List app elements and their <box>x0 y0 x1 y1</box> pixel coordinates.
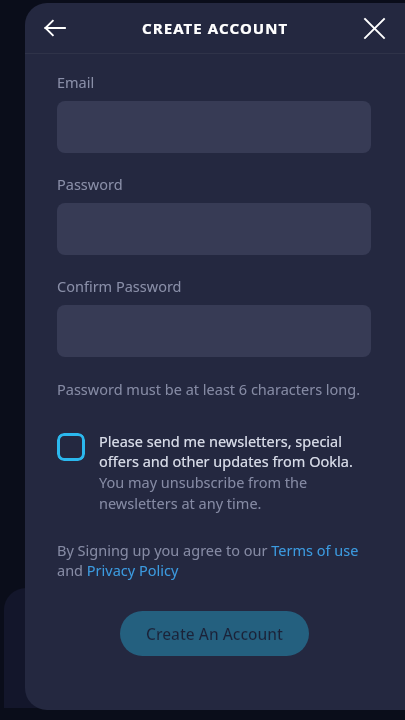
button[interactable]: By Signing up you agree to our Terms of … <box>57 540 371 581</box>
button[interactable]: Close <box>352 6 396 50</box>
staticText: Email <box>57 72 95 92</box>
staticText: Password must be at least 6 characters l… <box>57 379 361 399</box>
staticText: Create An Account <box>146 623 283 644</box>
button[interactable]: Please send me newsletters, special offe… <box>57 431 371 514</box>
button[interactable]: Back <box>31 4 79 52</box>
staticText: Confirm Password <box>57 276 182 296</box>
staticText: Password <box>57 174 123 194</box>
staticText: CREATE ACCOUNT <box>142 18 289 38</box>
button[interactable]: Create An Account <box>120 611 309 656</box>
staticText: Please send me newsletters, special offe… <box>99 431 371 514</box>
